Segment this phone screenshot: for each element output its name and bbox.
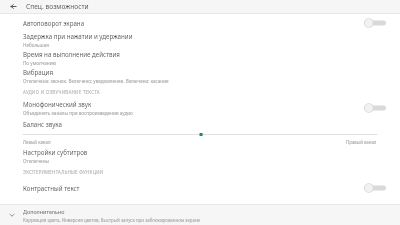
- staticText: По умолчанию: [23, 60, 57, 66]
- button[interactable]: Автоповорот экрана: [0, 14, 400, 31]
- staticText: Контрастный текст: [23, 184, 80, 192]
- staticText: Отключена: звонок. Включено: уведомление…: [23, 78, 169, 84]
- staticText: ЭКСПЕРИМЕНТАЛЬНЫЕ ФУНКЦИИ: [23, 169, 104, 175]
- button[interactable]: Баланс звука: [0, 117, 400, 147]
- staticText: Отключены: [23, 158, 49, 164]
- button[interactable]: Контрастный текст: [0, 179, 400, 196]
- button[interactable]: Развернуть: [0, 205, 400, 225]
- staticText: Спец. возможности: [26, 2, 89, 11]
- staticText: Автоповорот экрана: [23, 19, 85, 27]
- button[interactable]: Вибрация: [0, 67, 400, 85]
- button[interactable]: Назад: [0, 0, 26, 13]
- button[interactable]: Задержка при нажатии и удержании: [0, 31, 400, 49]
- staticText: Баланс звука: [23, 120, 62, 128]
- staticText: Настройки субтитров: [23, 148, 88, 156]
- staticText: АУДИО И ОЗВУЧИВАНИЕ ТЕКСТА: [23, 89, 100, 95]
- button[interactable]: Монофонический звук: [0, 99, 400, 117]
- staticText: Время на выполнение действия: [23, 50, 120, 58]
- staticText: Задержка при нажатии и удержании: [23, 32, 133, 40]
- staticText: Коррекция цвета, Инверсия цветов, Быстры…: [23, 217, 201, 223]
- button[interactable]: Время на выполнение действия: [0, 49, 400, 67]
- staticText: Правый канал: [346, 139, 377, 145]
- staticText: Дополнительно: [23, 208, 65, 215]
- button[interactable]: Настройки субтитров: [0, 147, 400, 165]
- staticText: Вибрация: [23, 68, 53, 76]
- staticText: Объединять каналы при воспроизведении ау…: [23, 110, 133, 116]
- other: Развернуть: [0, 205, 23, 225]
- staticText: Левый канал: [23, 139, 51, 145]
- staticText: Монофонический звук: [23, 100, 92, 108]
- staticText: Небольшая: [23, 42, 49, 48]
